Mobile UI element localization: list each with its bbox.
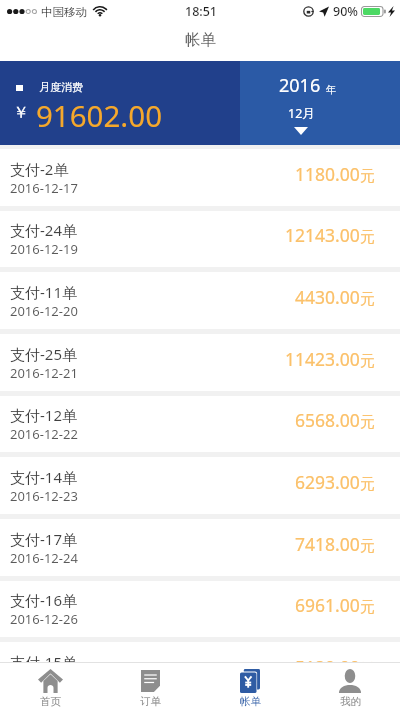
staticText: 元	[360, 352, 375, 371]
staticText: 元	[360, 475, 375, 494]
staticText: 7418.00	[295, 532, 360, 556]
button[interactable]: 订单	[100, 663, 200, 710]
staticText: 支付-14单	[10, 467, 77, 487]
staticText: 6961.00	[295, 593, 360, 617]
staticText: 我的	[340, 695, 361, 708]
button[interactable]: 支付-14单	[0, 457, 400, 514]
staticText: 元	[360, 290, 375, 309]
staticText: 2016-12-17	[10, 179, 78, 197]
staticText: 帐单	[240, 695, 261, 708]
staticText: 1180.00	[295, 162, 360, 186]
button[interactable]: 帐单	[200, 663, 300, 710]
staticText: 月度消费	[39, 80, 83, 94]
staticText: 支付-17单	[10, 529, 77, 549]
staticText: 2016-12-27	[10, 672, 78, 690]
button[interactable]: 支付-2单	[0, 149, 400, 206]
staticText: 支付-12单	[10, 405, 77, 425]
staticText: 12143.00	[285, 223, 360, 247]
staticText: 12月	[288, 105, 315, 122]
staticText: 元	[360, 537, 375, 556]
staticText: 帐单	[185, 30, 216, 50]
staticText: 2016-12-20	[10, 302, 78, 320]
staticText: 2016	[279, 73, 321, 98]
staticText: 2016-12-26	[10, 610, 78, 628]
button[interactable]: 2016	[240, 61, 400, 145]
staticText: 18:51	[185, 3, 218, 20]
button[interactable]: 支付-24单	[0, 211, 400, 267]
button[interactable]: 支付-25单	[0, 334, 400, 391]
button[interactable]: 我的	[300, 663, 400, 710]
staticText: 中国移动	[41, 5, 87, 19]
staticText: 4430.00	[295, 285, 360, 309]
staticText: 2016-12-19	[10, 240, 78, 258]
button[interactable]: 支付-11单	[0, 272, 400, 329]
staticText: 91602.00	[36, 95, 163, 135]
staticText: 6293.00	[295, 470, 360, 494]
staticText: 元	[360, 413, 375, 432]
staticText: 元	[360, 228, 375, 247]
staticText: 元	[360, 598, 375, 617]
staticText: 支付-2单	[10, 159, 69, 179]
button[interactable]: 首页	[0, 663, 100, 710]
staticText: 支付-16单	[10, 590, 77, 610]
staticText: 首页	[40, 695, 61, 708]
button[interactable]: 支付-12单	[0, 396, 400, 452]
staticText: 订单	[140, 695, 161, 708]
staticText: 支付-25单	[10, 344, 77, 364]
staticText: 2016-12-23	[10, 487, 78, 505]
button[interactable]: 支付-15单	[0, 642, 400, 699]
staticText: 支付-24单	[10, 220, 77, 240]
button[interactable]: 支付-17单	[0, 519, 400, 576]
button[interactable]: 支付-16单	[0, 581, 400, 637]
staticText: 5120.00	[295, 655, 360, 679]
staticText: 11423.00	[285, 347, 360, 371]
staticText: 2016-12-24	[10, 549, 78, 567]
staticText: 2016-12-21	[10, 364, 78, 382]
staticText: 支付-11单	[10, 282, 77, 302]
staticText: 支付-15单	[10, 652, 77, 672]
staticText: 6568.00	[295, 408, 360, 432]
staticText: 2016-12-22	[10, 425, 78, 443]
staticText: 元	[360, 167, 375, 186]
staticText: 元	[360, 660, 375, 679]
staticText: 90%	[333, 3, 358, 20]
staticText: ￥	[13, 103, 29, 123]
staticText: 年	[326, 83, 336, 96]
